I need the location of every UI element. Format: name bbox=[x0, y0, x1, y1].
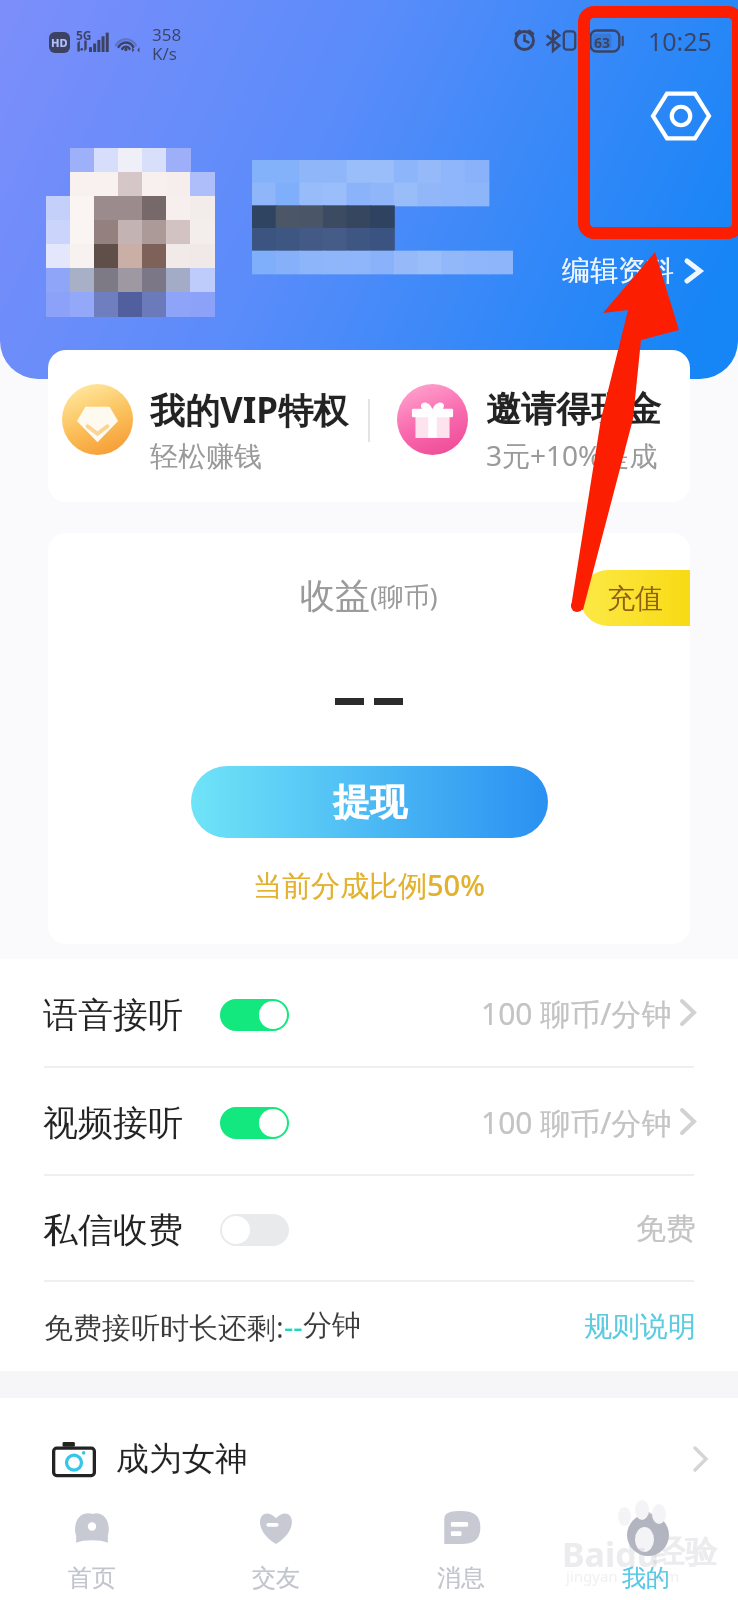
staticText: 视频接听 bbox=[43, 1101, 183, 1145]
button[interactable]: 邀请得现金 bbox=[370, 350, 690, 502]
staticText: 100 聊币/分钟 bbox=[481, 993, 672, 1034]
button[interactable]: 充值 bbox=[580, 570, 690, 626]
button[interactable]: 交友 bbox=[184, 1490, 368, 1600]
staticText: .com bbox=[645, 1566, 680, 1586]
staticText: 当前分成比例50% bbox=[253, 865, 485, 905]
staticText: Baidu bbox=[562, 1531, 659, 1577]
staticText: 私信收费 bbox=[43, 1208, 183, 1252]
button[interactable]: 提现 bbox=[191, 766, 548, 838]
staticText: 充值 bbox=[607, 581, 663, 616]
staticText: 3元+10%提成 bbox=[486, 436, 658, 474]
button[interactable]: 成为女神 bbox=[0, 1424, 738, 1494]
staticText: 编辑资料 bbox=[562, 253, 674, 288]
button[interactable]: 首页 bbox=[0, 1490, 184, 1600]
staticText: 我的VIP特权 bbox=[150, 386, 349, 434]
staticText: 分钟 bbox=[303, 1307, 361, 1344]
button[interactable]: 语音接听 bbox=[0, 959, 738, 1066]
staticText: 邀请得现金 bbox=[486, 387, 661, 431]
staticText: 我的 bbox=[622, 1563, 670, 1593]
button[interactable]: 我的 bbox=[553, 1490, 738, 1600]
button[interactable]: 编辑资料 bbox=[562, 253, 702, 288]
button[interactable]: 视频接听 toggle bbox=[220, 1107, 289, 1139]
button[interactable]: 我的VIP特权 bbox=[48, 350, 368, 502]
staticText: 100 聊币/分钟 bbox=[481, 1102, 672, 1143]
button[interactable]: 私信收费 bbox=[0, 1176, 738, 1280]
staticText: 358 bbox=[152, 23, 182, 46]
staticText: 63 bbox=[594, 33, 611, 52]
staticText: 提现 bbox=[333, 779, 407, 826]
staticText: 收益 bbox=[300, 574, 370, 618]
staticText: 语音接听 bbox=[43, 993, 183, 1037]
button[interactable]: 私信收费 toggle bbox=[220, 1214, 289, 1246]
button[interactable]: Settings bbox=[645, 80, 717, 152]
staticText: 首页 bbox=[68, 1563, 116, 1593]
staticText: K/s bbox=[152, 42, 177, 65]
staticText: -- bbox=[284, 1307, 303, 1346]
staticText: jingyan bbox=[566, 1566, 618, 1586]
staticText: 5G bbox=[76, 27, 92, 43]
staticText: 10:25 bbox=[648, 24, 712, 58]
staticText: HD bbox=[51, 35, 68, 50]
staticText: (聊币) bbox=[370, 578, 438, 614]
staticText: 经验 bbox=[653, 1532, 717, 1572]
staticText: 交友 bbox=[252, 1563, 300, 1593]
staticText: 规则说明 bbox=[584, 1309, 696, 1344]
button[interactable]: 语音接听 toggle bbox=[220, 999, 289, 1031]
staticText: 免费 bbox=[636, 1210, 696, 1248]
button[interactable]: 免费接听时长还剩: bbox=[0, 1282, 738, 1371]
staticText: 成为女神 bbox=[116, 1438, 248, 1480]
staticText: 轻松赚钱 bbox=[150, 439, 262, 474]
staticText: 消息 bbox=[437, 1563, 485, 1593]
staticText: 免费接听时长还剩: bbox=[44, 1307, 284, 1347]
button[interactable]: 视频接听 bbox=[0, 1068, 738, 1174]
button[interactable]: 消息 bbox=[368, 1490, 553, 1600]
